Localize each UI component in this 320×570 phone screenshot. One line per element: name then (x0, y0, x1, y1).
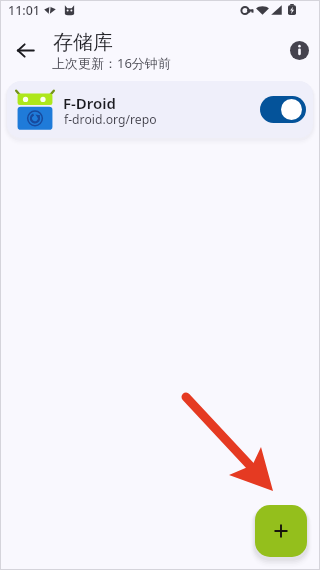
staticText: f-droid.org/repo (64, 111, 157, 128)
button[interactable]: Add repository (255, 505, 307, 557)
staticText: F-Droid (63, 93, 116, 113)
staticText: 11:01 (8, 2, 41, 19)
button[interactable]: Toggle repository (260, 96, 306, 123)
button[interactable]: F-Droid (7, 81, 313, 138)
button[interactable]: Back (9, 34, 42, 67)
staticText: 存储库 (53, 30, 113, 55)
button[interactable]: Info (284, 35, 314, 65)
staticText: 上次更新：16分钟前 (52, 54, 171, 72)
